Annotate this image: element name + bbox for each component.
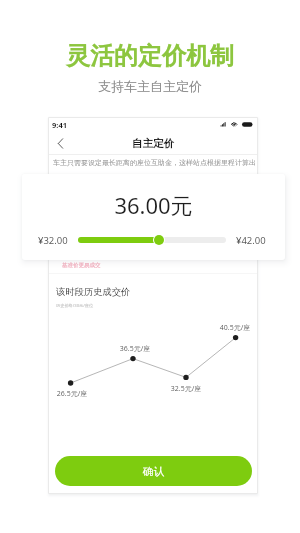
- staticText: 36.00元: [22, 190, 285, 220]
- button[interactable]: Price slider: [153, 234, 165, 246]
- staticText: 自主定价: [132, 137, 174, 150]
- staticText: 确认: [143, 465, 164, 478]
- staticText: 26.5元/座: [55, 389, 89, 399]
- staticText: 32.5元/座: [169, 384, 203, 394]
- staticText: 基准价更易成交: [62, 262, 101, 269]
- staticText: ¥42.00: [236, 234, 266, 247]
- staticText: 该时段历史成交价: [56, 286, 131, 298]
- staticText: ¥32.00: [38, 234, 68, 247]
- button[interactable]: Back: [52, 135, 68, 151]
- staticText: 历史价格/30元/座位: [56, 303, 94, 309]
- button[interactable]: 确认: [55, 456, 252, 486]
- staticText: 车主只需要设定最长距离的座位互助金，这样站点根据里程计算出: [53, 158, 258, 167]
- staticText: 支持车主自主定价: [0, 78, 300, 94]
- staticText: 9:41: [52, 120, 67, 130]
- staticText: 40.5元/座: [218, 323, 252, 333]
- staticText: 36.5元/座: [118, 344, 152, 354]
- staticText: 灵活的定价机制: [0, 41, 300, 71]
